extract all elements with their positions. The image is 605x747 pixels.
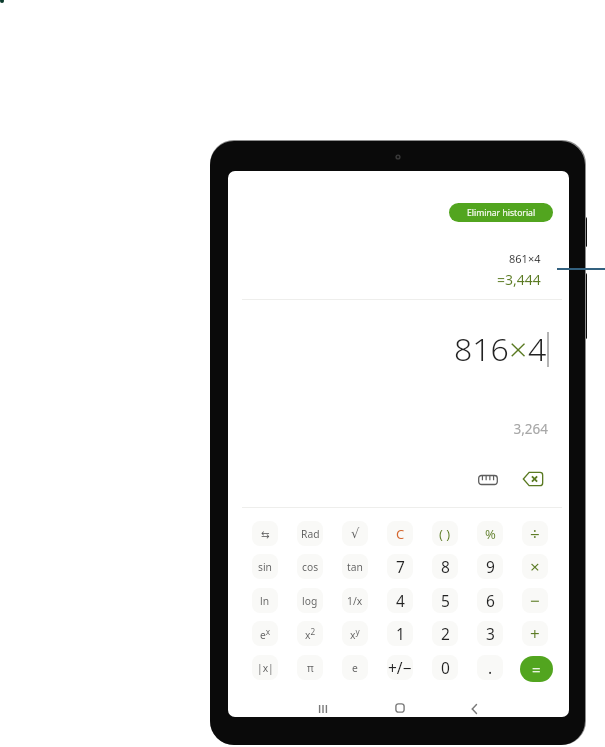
button[interactable]: + (522, 621, 548, 646)
staticText: 4 (528, 327, 547, 371)
button[interactable]: . (477, 655, 503, 680)
button[interactable]: 6 (477, 588, 503, 613)
staticText: =3,444 (497, 270, 541, 289)
button[interactable]: ln (252, 588, 278, 613)
staticText: +/− (388, 657, 412, 678)
staticText: ( ) (439, 525, 451, 543)
staticText: 3 (486, 623, 495, 644)
button[interactable]: e (342, 655, 368, 680)
staticText: 6 (486, 590, 495, 611)
button[interactable]: ex (252, 621, 278, 646)
staticText: 0 (441, 657, 450, 678)
staticText: 5 (441, 590, 450, 611)
button[interactable]: 4 (387, 588, 413, 613)
button[interactable]: 8 (432, 554, 458, 579)
staticText: 816 (454, 327, 509, 371)
staticText: × (509, 327, 528, 371)
staticText: cos (302, 560, 319, 574)
button[interactable]: cos (297, 554, 323, 579)
button[interactable]: +/− (387, 655, 413, 680)
staticText: . (488, 657, 493, 678)
button[interactable]: 1 (387, 621, 413, 646)
staticText: 7 (396, 556, 405, 577)
staticText: x2 (305, 626, 316, 642)
button[interactable]: 7 (387, 554, 413, 579)
button[interactable]: = (520, 656, 553, 682)
button[interactable]: − (522, 588, 548, 613)
staticText: ln (260, 594, 270, 608)
staticText: 4 (396, 590, 405, 611)
button[interactable]: π (297, 655, 323, 680)
button[interactable]: Unit converter (474, 469, 502, 491)
staticText: tan (347, 560, 363, 574)
button[interactable]: Back (460, 695, 488, 717)
staticText: Rad (301, 527, 320, 541)
staticText: − (530, 589, 540, 612)
staticText: = (532, 659, 541, 679)
button[interactable]: 1/x (342, 588, 368, 613)
staticText: π (307, 661, 314, 675)
staticText: + (530, 622, 540, 645)
staticText: 8 (441, 556, 450, 577)
button[interactable]: C (387, 521, 413, 546)
button[interactable]: 9 (477, 554, 503, 579)
button[interactable]: |x| (252, 655, 278, 680)
button[interactable]: Recents (309, 695, 337, 717)
button[interactable]: Rad (297, 521, 323, 546)
staticText: log (302, 594, 318, 608)
staticText: 1 (396, 623, 405, 644)
staticText: e (352, 661, 358, 675)
button[interactable]: Home (386, 694, 414, 717)
staticText: sin (258, 560, 272, 574)
staticText: C (396, 525, 405, 543)
staticText: 861×4 (509, 251, 541, 266)
button[interactable]: √ (342, 521, 368, 546)
staticText: xy (350, 626, 360, 642)
button[interactable]: Eliminar historial (449, 203, 553, 222)
staticText: ex (260, 626, 271, 642)
button[interactable]: ⇆ (252, 521, 278, 546)
staticText: × (530, 555, 540, 578)
button[interactable]: sin (252, 554, 278, 579)
button[interactable]: 2 (432, 621, 458, 646)
button[interactable]: × (522, 554, 548, 579)
button[interactable]: xy (342, 621, 368, 646)
button[interactable]: 3 (477, 621, 503, 646)
staticText: 2 (441, 623, 450, 644)
button[interactable]: log (297, 588, 323, 613)
button[interactable]: ( ) (432, 521, 458, 546)
staticText: % (485, 525, 496, 543)
staticText: 3,264 (228, 420, 548, 438)
staticText: √ (351, 526, 360, 541)
staticText: ÷ (530, 522, 540, 545)
button[interactable]: % (477, 521, 503, 546)
staticText: ⇆ (261, 528, 270, 540)
staticText: 9 (486, 556, 495, 577)
button[interactable]: Backspace (519, 467, 547, 491)
button[interactable]: x2 (297, 621, 323, 646)
staticText: 1/x (347, 594, 363, 608)
staticText: |x| (257, 661, 274, 675)
button[interactable]: ÷ (522, 521, 548, 546)
staticText: Eliminar historial (467, 207, 536, 219)
button[interactable]: 5 (432, 588, 458, 613)
button[interactable]: tan (342, 554, 368, 579)
button[interactable]: 0 (432, 655, 458, 680)
